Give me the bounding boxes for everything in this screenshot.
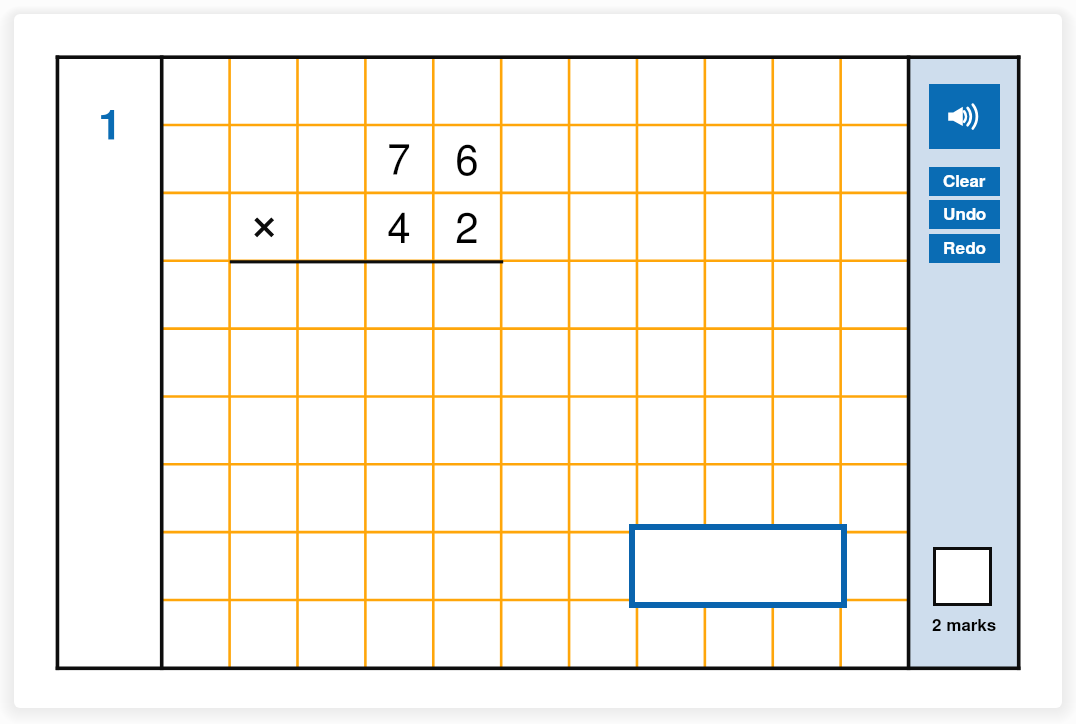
button[interactable]: Undo [929,200,1000,229]
button[interactable]: Redo [929,234,1000,263]
staticText: Clear [943,173,986,190]
staticText: 2 [455,209,479,251]
staticText: Redo [943,240,986,257]
button[interactable]: Play audio [929,84,1000,149]
staticText: 4 [387,209,411,251]
button[interactable]: Clear [929,167,1000,196]
button[interactable]: Answer box [933,547,992,606]
staticText: 6 [455,141,479,183]
staticText: 7 [387,141,411,183]
staticText: Undo [943,206,987,223]
staticText: 2 marks [932,617,997,634]
staticText: 1 [98,105,122,147]
